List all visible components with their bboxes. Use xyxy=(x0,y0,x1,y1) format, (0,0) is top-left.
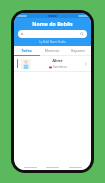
button[interactable]: Rapazes xyxy=(65,46,91,55)
button[interactable]: Open name details xyxy=(82,56,90,71)
staticText: by Bebê Nome Studio xyxy=(14,40,91,44)
staticText: Meninas xyxy=(39,48,65,53)
button[interactable]: Meninas xyxy=(39,46,65,55)
staticText: Nome do Bebês xyxy=(14,20,91,27)
staticText: Rapazes xyxy=(65,48,91,53)
button[interactable]: Todos xyxy=(14,46,39,55)
button[interactable]: Search names xyxy=(18,30,87,38)
staticText: Germânica xyxy=(53,65,67,69)
button[interactable]: Aline xyxy=(14,56,91,71)
staticText: Aline xyxy=(33,58,82,64)
staticText: Todos xyxy=(14,48,39,53)
